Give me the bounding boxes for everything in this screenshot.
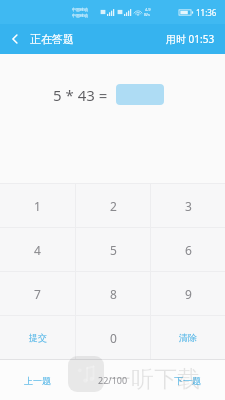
- staticText: 一听下载: [108, 365, 200, 394]
- staticText: 清除: [179, 332, 197, 343]
- staticText: 7: [34, 286, 41, 302]
- staticText: 22/100: [98, 374, 128, 386]
- button[interactable]: 4: [0, 228, 75, 271]
- staticText: 5: [110, 242, 117, 258]
- staticText: 3: [185, 198, 192, 214]
- button[interactable]: 清除: [151, 316, 225, 359]
- button[interactable]: Back: [0, 28, 82, 50]
- button[interactable]: 7: [0, 272, 75, 315]
- staticText: 0: [110, 330, 117, 346]
- staticText: 提交: [29, 332, 47, 343]
- staticText: 4.9: [145, 7, 151, 12]
- button[interactable]: 上一题: [0, 367, 59, 394]
- staticText: 5 * 43 =: [53, 85, 108, 105]
- button[interactable]: 8: [76, 272, 150, 315]
- staticText: 11:36: [196, 7, 217, 18]
- staticText: 2: [110, 198, 117, 214]
- button[interactable]: 6: [151, 228, 225, 271]
- staticText: B/s: [144, 12, 151, 17]
- staticText: 4: [34, 242, 41, 258]
- staticText: 9: [185, 286, 192, 302]
- staticText: 1: [34, 198, 41, 214]
- staticText: 正在答题: [30, 32, 74, 46]
- button[interactable]: 5: [76, 228, 150, 271]
- button[interactable]: 2: [76, 184, 150, 227]
- button[interactable]: 0: [76, 316, 150, 359]
- staticText: 6: [185, 242, 192, 258]
- staticText: 中国移动: [72, 13, 88, 18]
- button[interactable]: 3: [151, 184, 225, 227]
- staticText: 用时 01:53: [166, 32, 215, 46]
- button[interactable]: 9: [151, 272, 225, 315]
- button[interactable]: 1: [0, 184, 75, 227]
- button[interactable]: 提交: [0, 316, 75, 359]
- button[interactable]: 下一题: [166, 367, 225, 394]
- staticText: 8: [110, 286, 117, 302]
- other: Back: [8, 32, 22, 46]
- staticText: 中国移动: [72, 7, 88, 12]
- button[interactable]: [116, 84, 164, 105]
